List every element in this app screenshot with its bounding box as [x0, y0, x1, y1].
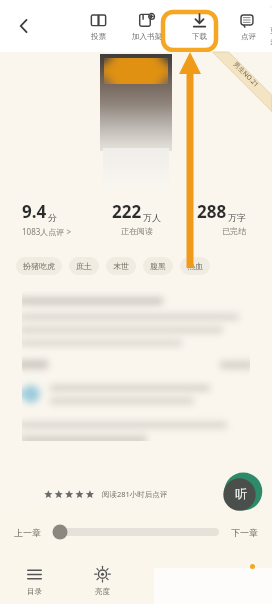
- staticText: 更多: [270, 26, 272, 46]
- button[interactable]: 288: [179, 200, 246, 236]
- button[interactable]: 扮猪吃虎: [16, 257, 62, 275]
- staticText: 男生NO.21: [232, 60, 261, 89]
- button[interactable]: 下一章: [231, 527, 258, 538]
- staticText: 万人: [143, 212, 161, 223]
- staticText: 222: [112, 200, 142, 223]
- staticText: 目录: [27, 587, 42, 596]
- button[interactable]: [49, 521, 223, 543]
- staticText: 扮猪吃虎: [23, 261, 55, 271]
- staticText: 点评: [241, 32, 256, 41]
- staticText: 末世: [113, 261, 129, 271]
- button[interactable]: 亮度: [68, 558, 136, 604]
- staticText: 9.4: [22, 200, 47, 223]
- staticText: 热血: [187, 261, 203, 271]
- staticText: 庶土: [76, 261, 92, 271]
- staticText: 分: [48, 212, 57, 223]
- staticText: 288: [197, 200, 227, 223]
- staticText: 加入书架: [132, 32, 162, 41]
- button[interactable]: 222: [94, 200, 179, 236]
- button[interactable]: 返回: [4, 6, 44, 46]
- button[interactable]: 上一章: [14, 527, 41, 538]
- staticText: 下载: [192, 32, 207, 41]
- staticText: 投票: [91, 32, 106, 41]
- staticText: 听: [235, 486, 247, 501]
- staticText: 亮度: [95, 587, 110, 596]
- button[interactable]: 下载: [173, 5, 226, 47]
- button[interactable]: 腹黑: [143, 257, 173, 275]
- staticText: 万字: [228, 212, 246, 223]
- staticText: 正在阅读: [121, 226, 153, 236]
- button[interactable]: 热血: [180, 257, 210, 275]
- button[interactable]: 目录: [0, 558, 68, 604]
- button[interactable]: 点评: [226, 5, 270, 47]
- button[interactable]: 加入书架: [120, 5, 173, 47]
- button[interactable]: 更多: [270, 5, 272, 47]
- staticText: 1083人点评 >: [22, 226, 71, 237]
- staticText: 腹黑: [150, 261, 166, 271]
- staticText: 已完结: [222, 226, 246, 236]
- button[interactable]: 9.4: [22, 200, 94, 237]
- button[interactable]: 末世: [106, 257, 136, 275]
- button[interactable]: 听书: [222, 474, 260, 512]
- staticText: 阅读281小时后点评: [102, 489, 168, 499]
- button[interactable]: 庶土: [69, 257, 99, 275]
- button[interactable]: 投票: [76, 5, 120, 47]
- button[interactable]: 阅读281小时后点评: [44, 489, 168, 499]
